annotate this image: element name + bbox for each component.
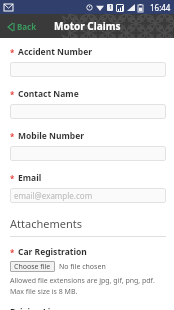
staticText: Car Registration [18, 246, 87, 258]
other: Back [8, 23, 14, 31]
staticText: Accident Number [18, 46, 93, 58]
staticText: No file chosen [59, 262, 106, 272]
staticText: * [10, 131, 15, 142]
button[interactable]: Back [6, 18, 39, 35]
button[interactable]: Choose file [10, 261, 55, 272]
staticText: * [10, 89, 15, 100]
staticText: Choose file [14, 262, 51, 272]
staticText: * [10, 47, 15, 58]
staticText: Back [17, 21, 37, 32]
staticText: * [10, 247, 15, 258]
button[interactable]: email@example.com [10, 188, 166, 203]
staticText: 1 [109, 4, 112, 11]
staticText: Email [18, 172, 42, 184]
staticText: Contact Name [18, 88, 79, 100]
staticText: email@example.com [14, 190, 93, 201]
staticText: Attachements [10, 216, 82, 231]
button[interactable] [10, 104, 166, 119]
staticText: Motor Claims [54, 19, 121, 33]
staticText: Driving License [10, 306, 75, 310]
button[interactable] [10, 62, 166, 77]
staticText: Allowed file extensions are jpg, gif, pn… [10, 276, 166, 296]
staticText: * [10, 173, 15, 184]
staticText: Mobile Number [18, 130, 85, 142]
staticText: 16:44 [150, 2, 171, 13]
button[interactable] [10, 146, 166, 161]
